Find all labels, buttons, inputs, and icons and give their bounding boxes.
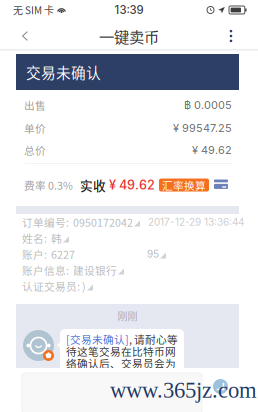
staticText: 95 <box>147 248 159 260</box>
staticText: 账户: 6227 <box>22 246 75 262</box>
staticText: 姓名: 韩 <box>22 230 62 246</box>
staticText: ฿ 0.0005 <box>184 98 232 112</box>
button[interactable]: 汇率换算 <box>159 178 209 191</box>
staticText: 交易未确认 <box>26 61 101 83</box>
staticText: , 请耐心等 <box>129 331 178 347</box>
staticText: 账户信息: 建设银行 <box>22 262 117 278</box>
staticText: 汇率换算 <box>162 177 206 193</box>
staticText: 实收 <box>80 176 106 194</box>
staticText: www.365jz.com <box>110 377 257 402</box>
staticText: 出售 <box>24 97 46 113</box>
button[interactable]: Message input <box>22 373 202 412</box>
staticText: 13:39 <box>114 3 143 17</box>
staticText: ¥ 99547.25 <box>173 121 232 135</box>
button[interactable]: Back <box>0 22 50 50</box>
staticText: 无 SIM 卡 <box>13 3 54 17</box>
staticText: 单价 <box>24 120 46 136</box>
staticText: ¥ 49.62 <box>106 177 155 193</box>
staticText: [交易未确认] <box>66 331 129 347</box>
button[interactable]: More options <box>204 22 258 50</box>
staticText: ¥ 49.62 <box>192 143 232 157</box>
staticText: 认证交易员: ) <box>22 278 86 294</box>
button[interactable]: Add attachment <box>213 379 228 394</box>
staticText: 络确认后、交易员会为 <box>66 355 176 371</box>
staticText: 订单编号: 0950172042 <box>22 214 133 230</box>
staticText: 待这笔交易在比特币网 <box>66 343 176 359</box>
staticText: 费率 0.3% <box>24 177 73 193</box>
staticText: 2017-12-29 13:36:44 <box>148 216 244 228</box>
staticText: 总价 <box>24 142 46 158</box>
staticText: 一键卖币 <box>99 25 159 47</box>
staticText: 刚刚 <box>117 309 137 323</box>
